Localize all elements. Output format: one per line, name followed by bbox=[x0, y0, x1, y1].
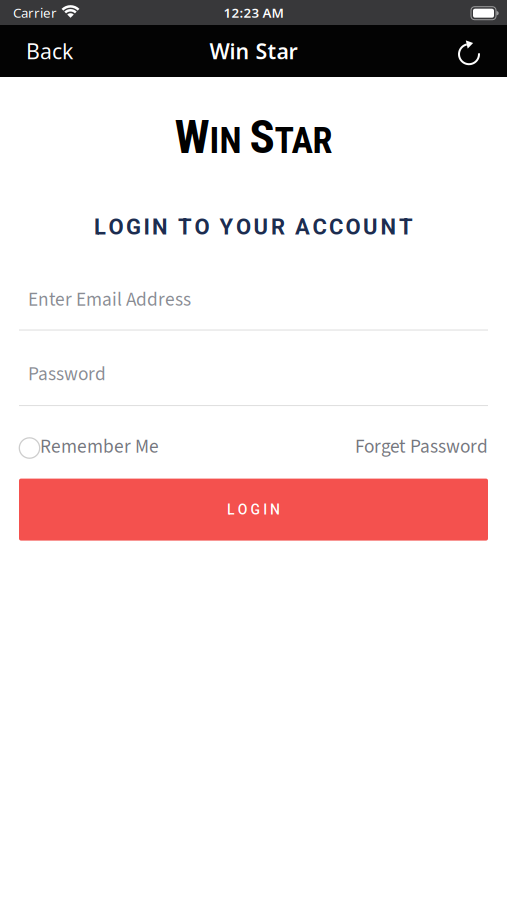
staticText: O bbox=[108, 214, 123, 240]
staticText: G bbox=[250, 501, 260, 518]
staticText: Enter Email Address bbox=[28, 286, 191, 313]
staticText: O bbox=[345, 214, 360, 240]
staticText: O bbox=[238, 501, 248, 518]
staticText: T bbox=[399, 214, 413, 240]
staticText: A bbox=[295, 214, 310, 240]
staticText: Password bbox=[28, 360, 106, 388]
staticText: Back bbox=[26, 37, 73, 65]
staticText: L bbox=[227, 501, 235, 518]
button[interactable]: Enter Email Address bbox=[19, 286, 488, 330]
staticText: L bbox=[94, 214, 106, 240]
button[interactable]: Password bbox=[19, 360, 488, 406]
staticText: N bbox=[152, 214, 168, 240]
staticText: R bbox=[271, 214, 285, 240]
staticText: W bbox=[174, 109, 209, 165]
staticText: Y bbox=[219, 214, 233, 240]
staticText: Forget Password bbox=[355, 433, 488, 461]
staticText: U bbox=[253, 214, 268, 240]
staticText: G bbox=[126, 214, 141, 240]
staticText: S bbox=[249, 109, 274, 165]
staticText: Carrier bbox=[13, 4, 57, 21]
staticText: I bbox=[143, 214, 149, 240]
button[interactable]: Forget Password bbox=[355, 433, 488, 461]
button[interactable]: Remember Me bbox=[19, 433, 159, 461]
staticText: U bbox=[363, 214, 378, 240]
button[interactable] bbox=[458, 39, 480, 62]
staticText: 12:23 AM bbox=[223, 4, 283, 21]
staticText: N bbox=[380, 214, 396, 240]
staticText: TAR bbox=[274, 120, 332, 162]
staticText: N bbox=[270, 501, 280, 518]
staticText: IN bbox=[209, 120, 241, 162]
button[interactable]: L bbox=[19, 479, 488, 541]
staticText: Remember Me bbox=[40, 433, 159, 461]
staticText: O bbox=[194, 214, 209, 240]
staticText: C bbox=[329, 214, 343, 240]
staticText: C bbox=[312, 214, 326, 240]
staticText: Win Star bbox=[209, 37, 297, 65]
staticText: O bbox=[236, 214, 251, 240]
staticText: T bbox=[178, 214, 192, 240]
button[interactable]: Back bbox=[26, 37, 73, 65]
staticText: I bbox=[263, 501, 267, 518]
